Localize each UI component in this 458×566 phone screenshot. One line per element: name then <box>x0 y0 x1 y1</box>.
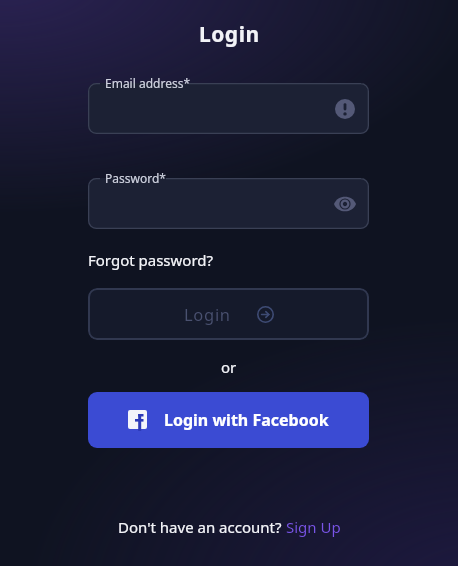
button[interactable]: Sign Up <box>286 517 341 537</box>
button[interactable]: Forgot password? <box>88 250 214 270</box>
staticText: Login <box>184 303 231 325</box>
button[interactable] <box>88 178 369 229</box>
staticText: Email address* <box>105 75 191 91</box>
staticText: Password* <box>105 170 166 186</box>
staticText: Don't have an account? <box>118 517 286 537</box>
button[interactable] <box>88 83 369 134</box>
staticText: or <box>221 357 237 377</box>
staticText: Login <box>199 20 260 49</box>
button[interactable]: Login with Facebook <box>88 392 369 448</box>
button[interactable]: Login <box>88 288 369 340</box>
staticText: Login with Facebook <box>164 409 329 431</box>
